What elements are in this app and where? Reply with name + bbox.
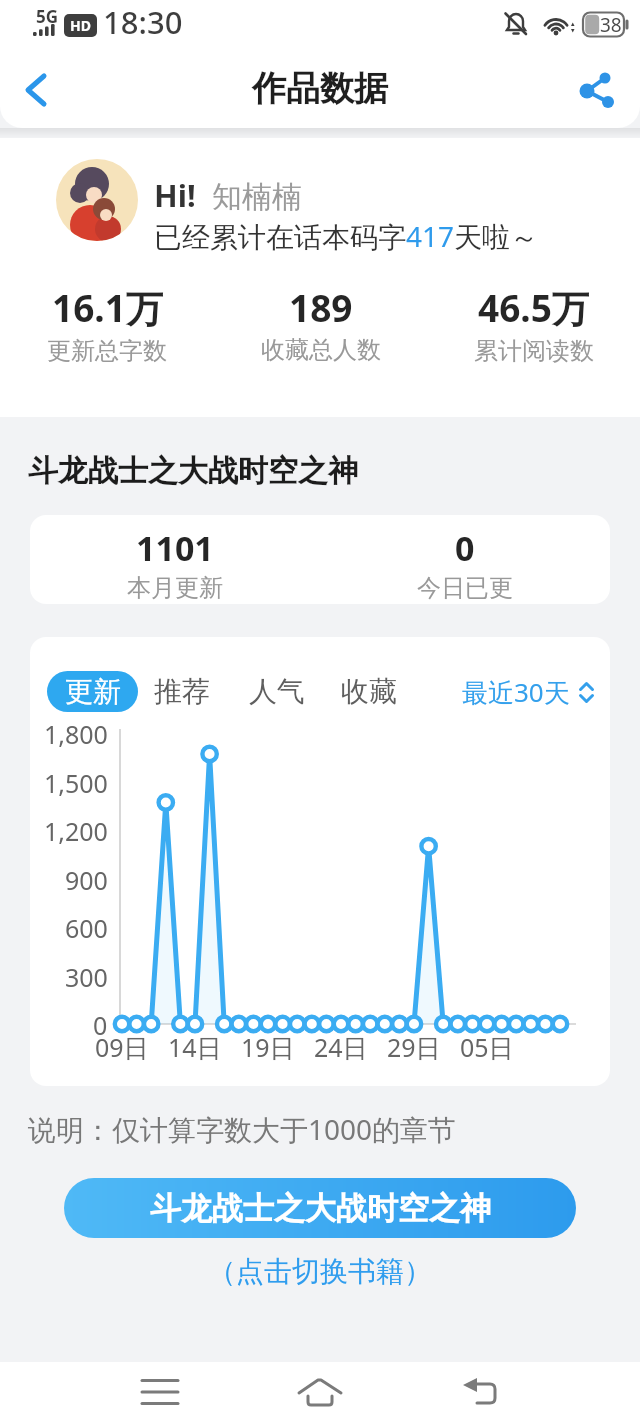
staticText: 更新总字数 xyxy=(47,336,167,366)
staticText: 0 xyxy=(455,525,475,571)
staticText: 今日已更 xyxy=(417,573,513,603)
staticText: 09日 xyxy=(95,1030,149,1062)
staticText: 收藏 xyxy=(341,674,397,709)
staticText: 300 xyxy=(65,960,108,992)
staticText: 24日 xyxy=(314,1030,368,1062)
staticText: 1,800 xyxy=(44,717,108,749)
staticText: 1,200 xyxy=(44,814,108,846)
staticText: 说明：仅计算字数大于1000的章节 xyxy=(28,1110,457,1148)
staticText: 累计阅读数 xyxy=(474,336,594,366)
staticText: 本月更新 xyxy=(127,573,223,603)
button[interactable] xyxy=(134,1364,186,1420)
button[interactable]: 人气 xyxy=(247,671,307,712)
button[interactable]: 1101 xyxy=(30,515,320,604)
staticText: 189 xyxy=(289,282,353,332)
staticText: 知楠楠 xyxy=(212,178,302,216)
staticText: 29日 xyxy=(387,1030,441,1062)
staticText: 人气 xyxy=(249,674,305,709)
button[interactable]: 斗龙战士之大战时空之神 xyxy=(64,1178,576,1238)
staticText: 16.1万 xyxy=(52,282,163,333)
staticText: 最近30天 xyxy=(462,674,570,710)
button[interactable] xyxy=(294,1364,346,1420)
staticText: 更新 xyxy=(65,674,121,709)
staticText: 收藏总人数 xyxy=(261,335,381,365)
button[interactable] xyxy=(56,159,138,241)
staticText: 14日 xyxy=(168,1030,222,1062)
staticText: 推荐 xyxy=(154,674,210,709)
button[interactable]: 0 xyxy=(320,515,610,604)
button[interactable] xyxy=(454,1364,506,1420)
button[interactable]: 更新 xyxy=(47,671,138,712)
staticText: HD xyxy=(70,16,91,35)
staticText: （点击切换书籍） xyxy=(208,1254,432,1289)
staticText: 05日 xyxy=(460,1030,514,1062)
button[interactable] xyxy=(10,68,62,112)
staticText: Hi! xyxy=(154,174,196,216)
staticText: 斗龙战士之大战时空之神 xyxy=(28,452,358,490)
button[interactable] xyxy=(570,68,622,112)
button[interactable]: （点击切换书籍） xyxy=(0,1254,640,1289)
staticText: 900 xyxy=(65,863,108,895)
staticText: 作品数据 xyxy=(252,67,388,110)
button[interactable]: 最近30天 xyxy=(360,671,594,712)
staticText: 5G xyxy=(36,5,59,28)
staticText: 斗龙战士之大战时空之神 xyxy=(150,1189,491,1228)
staticText: 38 xyxy=(600,12,622,38)
staticText: 18:30 xyxy=(103,1,183,43)
staticText: 46.5万 xyxy=(478,282,589,333)
button[interactable]: 收藏 xyxy=(339,671,399,712)
staticText: 已经累计在话本码字417天啦～ xyxy=(154,217,539,255)
staticText: 600 xyxy=(65,911,108,943)
staticText: 19日 xyxy=(241,1030,295,1062)
staticText: 0 xyxy=(93,1008,108,1040)
staticText: 1,500 xyxy=(44,766,108,798)
button[interactable]: 推荐 xyxy=(152,671,212,712)
staticText: 1101 xyxy=(136,525,214,571)
